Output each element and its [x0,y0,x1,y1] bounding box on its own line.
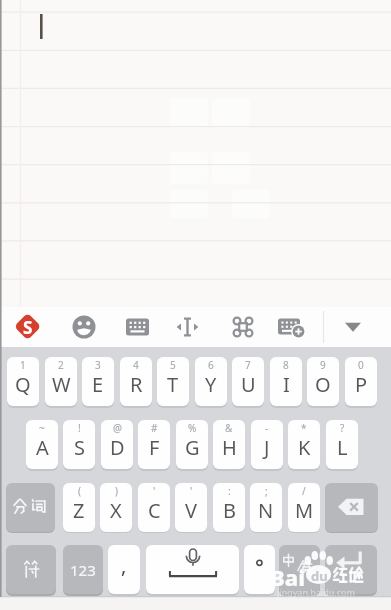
staticText: G [185,434,200,461]
staticText: : [228,484,231,498]
staticText: 6 [208,358,214,372]
button[interactable]: 3 [82,357,114,406]
button[interactable]: 5 [157,357,189,406]
button[interactable]: / [288,483,320,532]
staticText: S [74,434,85,461]
staticText: J [264,434,270,461]
button[interactable]: ~ [26,420,58,469]
staticText: du [311,567,328,585]
staticText: 7 [245,358,251,372]
staticText: F [149,434,160,461]
button[interactable] [279,545,320,594]
button[interactable] [6,483,55,532]
button[interactable]: 123 [63,545,103,594]
staticText: V [185,497,197,524]
staticText: / [302,484,306,498]
staticText: ? [340,421,345,435]
button[interactable]: - [251,420,283,469]
button[interactable]: 7 [232,357,264,406]
staticText: Y [205,371,217,398]
button[interactable]: 6 [195,357,227,406]
button[interactable] [325,483,378,532]
staticText: L [337,434,348,461]
staticText: H [222,434,237,461]
staticText: I [283,371,290,398]
staticText: W [52,371,71,398]
button[interactable] [166,307,210,347]
button[interactable]: @ [101,420,133,469]
button[interactable]: & [213,420,245,469]
button[interactable]: 4 [120,357,152,406]
staticText: M [295,497,314,524]
staticText: ; [265,484,268,498]
button[interactable]: 8 [270,357,302,406]
button[interactable] [325,545,377,594]
staticText: Bai [270,562,305,588]
button[interactable] [146,545,239,594]
button[interactable]: 1 [7,357,39,406]
staticText: & [225,421,233,435]
button[interactable]: ? [326,420,358,469]
button[interactable]: ( [63,483,95,532]
button[interactable]: 2 [45,357,77,406]
staticText: 4 [133,358,139,372]
button[interactable]: % [176,420,208,469]
staticText: 123 [70,560,96,580]
staticText: # [151,421,158,435]
staticText: 2 [58,358,64,372]
staticText: * [301,421,307,435]
staticText: R [130,371,143,398]
button[interactable] [0,0,391,307]
button[interactable] [331,307,375,347]
button[interactable]: ; [250,483,282,532]
staticText: ( [78,484,81,498]
staticText: E [92,371,104,398]
button[interactable] [62,307,106,347]
staticText: A [36,434,49,461]
staticText: T [167,371,179,398]
button[interactable]: : [213,483,245,532]
staticText: N [258,497,274,524]
staticText: ~ [39,421,45,435]
button[interactable]: ' [175,483,207,532]
button[interactable]: ' [138,483,170,532]
button[interactable]: 9 [307,357,339,406]
staticText: O [315,371,331,398]
staticText: , [121,552,127,579]
staticText: ! [78,421,81,435]
staticText: ) [115,484,118,498]
button[interactable]: # [138,420,170,469]
staticText: Z [73,497,85,524]
staticText: P [355,371,368,398]
button[interactable] [244,545,275,594]
button[interactable] [6,307,50,347]
staticText: B [223,497,236,524]
staticText: K [298,434,311,461]
staticText: 1 [20,358,26,372]
staticText: 3 [95,358,101,372]
button[interactable]: , [108,545,140,594]
button[interactable]: 0 [345,357,377,406]
staticText: S [23,316,33,338]
staticText: Q [15,371,31,398]
button[interactable]: ! [63,420,95,469]
staticText: ' [153,484,156,498]
staticText: 5 [170,358,176,372]
button[interactable]: ) [100,483,132,532]
button[interactable] [6,545,56,594]
staticText: 8 [283,358,289,372]
button[interactable] [268,307,312,347]
staticText: X [110,497,122,524]
button[interactable] [221,307,265,347]
button[interactable]: * [288,420,320,469]
staticText: 0 [358,358,364,372]
staticText: jingyan.baidu.com [277,586,355,598]
staticText: ' [190,484,193,498]
staticText: D [110,434,125,461]
button[interactable] [116,307,160,347]
staticText: 9 [320,358,326,372]
staticText: C [148,497,161,524]
staticText: @ [113,421,122,435]
staticText: - [265,421,269,435]
staticText: % [188,421,197,435]
